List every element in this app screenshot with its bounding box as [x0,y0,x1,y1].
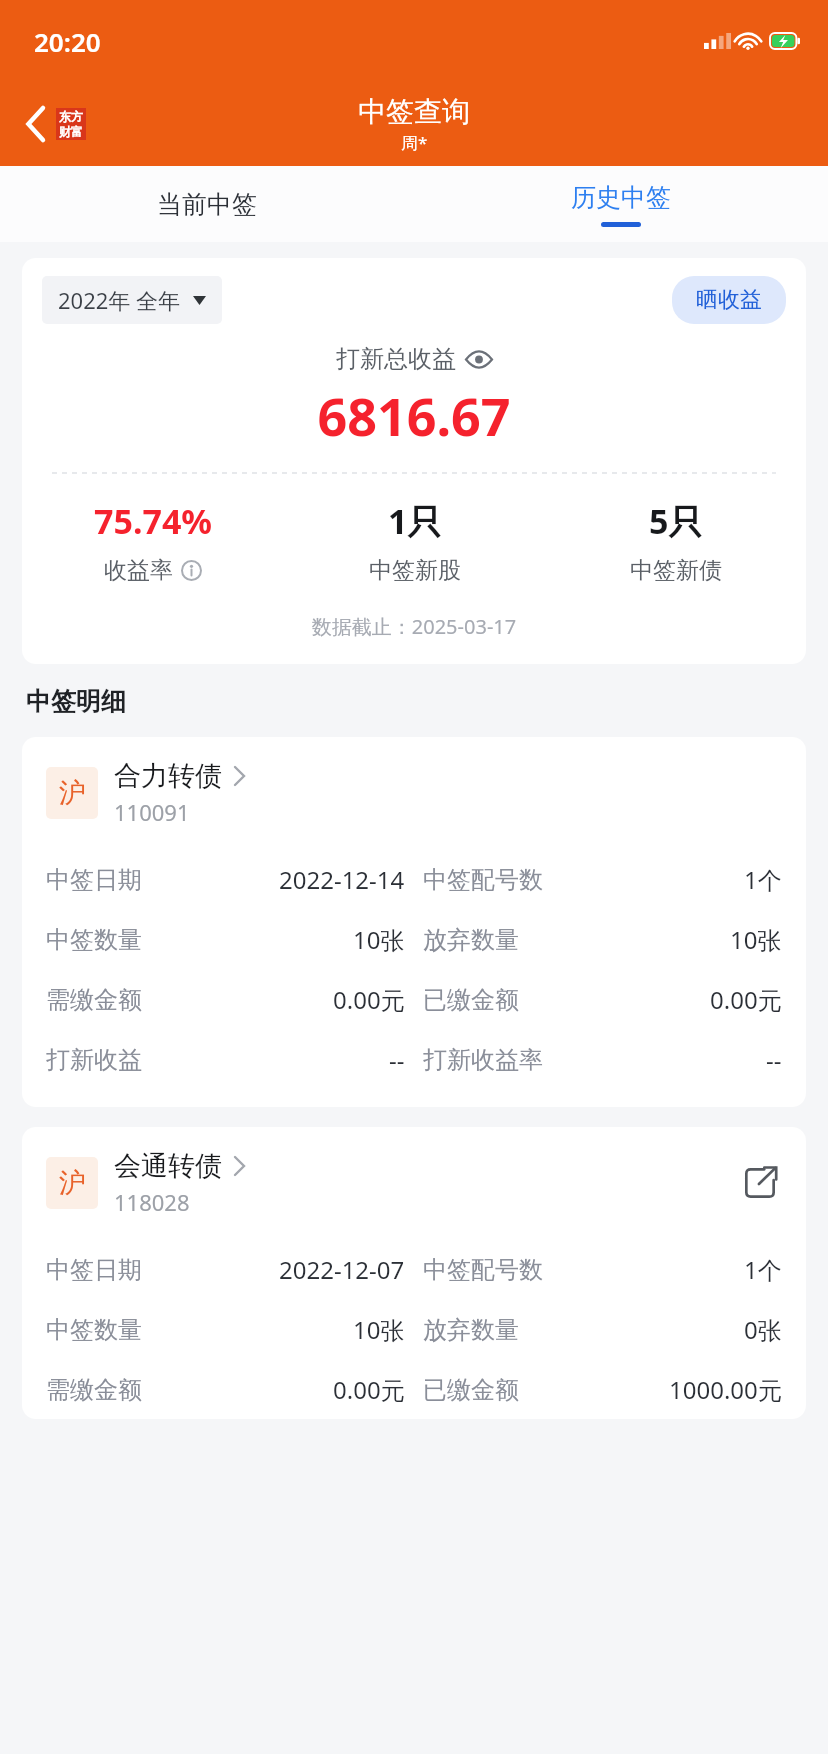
staticText: 已缴金额 [423,985,519,1015]
staticText: -- [766,1043,782,1076]
staticText: 2022-12-07 [279,1253,405,1286]
staticText: 0张 [744,1313,782,1346]
button[interactable]: 返回 东方财富 [22,102,90,146]
button[interactable]: 5只 [545,498,806,585]
staticText: 财富 [59,124,83,139]
staticText: 打新总收益 [336,344,456,374]
button[interactable]: 分享 [738,1161,782,1205]
staticText: 放弃数量 [423,1315,519,1345]
staticText: 0.00元 [333,1373,405,1406]
staticText: 沪 [59,1166,86,1200]
staticText: 75.74% [94,498,213,544]
staticText: 10张 [353,923,405,956]
staticText: 放弃数量 [423,925,519,955]
staticText: 中签日期 [46,1255,142,1285]
button[interactable]: 沪 [22,1127,806,1419]
staticText: 1000.00元 [669,1373,782,1406]
staticText: 0.00元 [333,983,405,1016]
staticText: 收益率 [104,556,173,585]
staticText: 2022年 全年 [58,285,181,315]
staticText: 合力转债 [114,759,222,793]
staticText: 0.00元 [710,983,782,1016]
staticText: 中签数量 [46,1315,142,1345]
staticText: 需缴金额 [46,1375,142,1405]
staticText: 中签新债 [630,556,722,585]
staticText: -- [389,1043,405,1076]
staticText: 沪 [59,776,86,810]
staticText: 20:20 [34,24,101,59]
staticText: 中签配号数 [423,865,543,895]
staticText: 118028 [114,1187,190,1217]
staticText: 需缴金额 [46,985,142,1015]
staticText: 打新收益率 [423,1045,543,1075]
button[interactable]: 当前中签 [0,166,414,242]
staticText: 1个 [744,1253,782,1286]
staticText: 中签配号数 [423,1255,543,1285]
button[interactable]: 隐藏收益 [466,351,492,368]
button[interactable]: 历史中签 [414,166,828,242]
button[interactable]: 1只 [284,498,545,585]
staticText: 当前中签 [157,189,257,220]
staticText: 中签新股 [369,556,461,585]
button[interactable]: 75.74% [22,498,284,585]
staticText: 10张 [353,1313,405,1346]
staticText: 6816.67 [22,380,806,451]
button[interactable]: 沪 [22,737,806,1107]
staticText: 10张 [730,923,782,956]
staticText: 110091 [114,797,190,827]
staticText: 会通转债 [114,1149,222,1183]
staticText: 历史中签 [571,182,671,213]
staticText: 中签日期 [46,865,142,895]
staticText: 周* [401,131,428,154]
staticText: 2022-12-14 [279,863,405,896]
staticText: 中签明细 [26,686,126,717]
staticText: 晒收益 [696,286,762,314]
staticText: 东方 [59,109,83,124]
staticText: 1只 [388,498,442,544]
staticText: 中签查询 [358,94,470,129]
staticText: 打新收益 [46,1045,142,1075]
button[interactable]: 晒收益 [672,276,786,324]
staticText: 中签数量 [46,925,142,955]
staticText: 5只 [649,498,703,544]
button[interactable]: 2022年 全年 [42,276,222,324]
staticText: 1个 [744,863,782,896]
staticText: 已缴金额 [423,1375,519,1405]
staticText: 数据截止：2025-03-17 [22,613,806,640]
